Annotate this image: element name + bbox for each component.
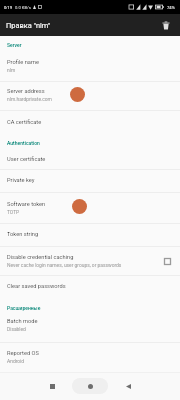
staticText: nlm	[7, 67, 16, 73]
button[interactable]: Private key	[0, 169, 180, 192]
staticText: Batch mode	[7, 318, 38, 325]
button[interactable]: Reported OS	[0, 342, 180, 372]
button[interactable]: Recents	[41, 375, 63, 397]
staticText: User certificate	[7, 156, 46, 163]
button[interactable]: Token string	[0, 223, 180, 246]
staticText: Software token	[7, 201, 46, 208]
button[interactable]: Toggle	[160, 254, 174, 268]
staticText: nlm.hardprivate.com	[7, 96, 52, 102]
staticText: Never cache login names, user groups, or…	[7, 262, 122, 268]
staticText: Profile name	[7, 59, 39, 66]
staticText: Server address	[7, 88, 45, 95]
button[interactable]: Software token	[0, 192, 180, 223]
staticText: Authentication	[7, 140, 40, 146]
staticText: Android	[7, 358, 24, 364]
staticText: Правка "nlm"	[6, 21, 51, 30]
staticText: 0.0 KB/s	[15, 5, 31, 10]
button[interactable]: Server address	[0, 81, 180, 110]
staticText: Reported OS	[7, 350, 39, 357]
button[interactable]: Home	[72, 378, 108, 394]
staticText: Расширенные	[7, 305, 41, 311]
staticText: 74%	[167, 5, 175, 10]
staticText: CA certificate	[7, 119, 42, 126]
staticText: Clear saved passwords	[7, 283, 66, 290]
staticText: Disable credential caching	[7, 254, 74, 261]
staticText: Server	[7, 42, 22, 48]
staticText: 0:19	[4, 5, 13, 10]
button[interactable]: Back	[117, 375, 139, 397]
button[interactable]: User certificate	[0, 146, 180, 169]
staticText: Token string	[7, 231, 39, 238]
button[interactable]: CA certificate	[0, 110, 180, 133]
button[interactable]: Delete	[157, 16, 175, 34]
button[interactable]: Profile name	[0, 51, 180, 81]
staticText: TOTP	[7, 209, 20, 215]
button[interactable]: Clear saved passwords	[0, 275, 180, 298]
staticText: Disabled	[7, 326, 26, 332]
button[interactable]: Batch mode	[0, 313, 180, 342]
button[interactable]: Disable credential caching	[0, 246, 180, 275]
staticText: Private key	[7, 177, 35, 184]
